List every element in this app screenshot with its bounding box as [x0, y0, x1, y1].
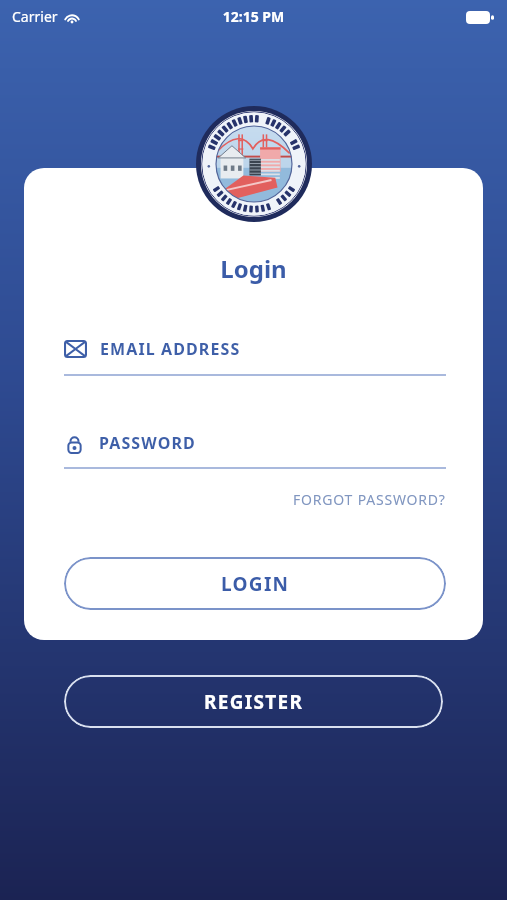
button[interactable]: PASSWORD — [64, 432, 446, 469]
staticText: REGISTER — [204, 689, 304, 715]
button[interactable]: FORGOT PASSWORD? — [289, 486, 450, 513]
staticText: Login — [24, 252, 483, 285]
button[interactable]: REGISTER — [64, 675, 443, 728]
staticText: LOGIN — [221, 571, 290, 597]
other: Ironworkers Local 89 logo — [196, 106, 312, 222]
staticText: PASSWORD — [99, 432, 196, 454]
button[interactable]: EMAIL ADDRESS — [64, 338, 446, 376]
button[interactable]: LOGIN — [64, 557, 446, 610]
staticText: Carrier — [12, 7, 58, 26]
staticText: 12:15 PM — [0, 7, 507, 26]
staticText: EMAIL ADDRESS — [100, 338, 241, 360]
